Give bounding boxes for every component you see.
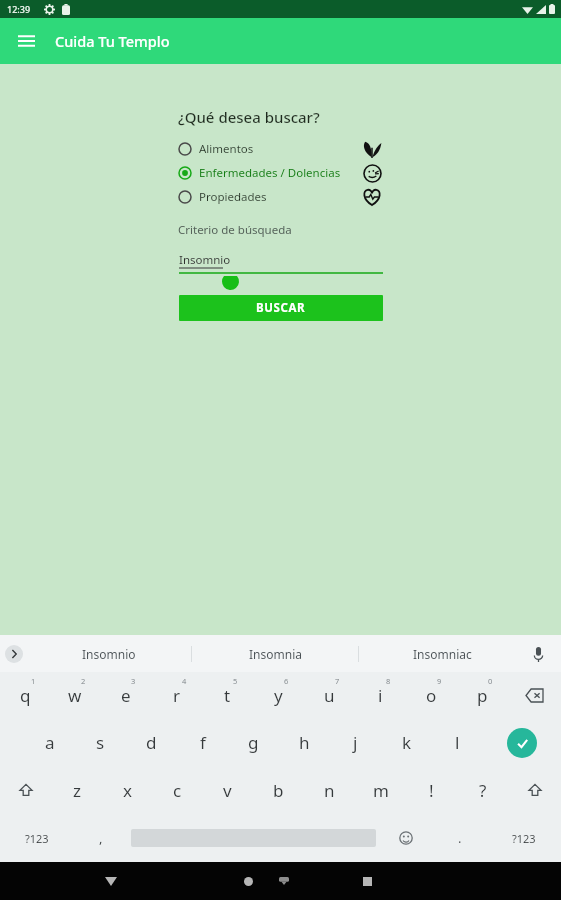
button[interactable]: Shift <box>0 766 52 814</box>
staticText: e <box>121 684 131 707</box>
staticText: k <box>402 731 412 754</box>
button[interactable]: g <box>228 719 279 766</box>
button[interactable]: Home <box>231 864 265 898</box>
staticText: n <box>324 779 335 802</box>
button[interactable]: p <box>457 672 508 719</box>
staticText: 5 <box>233 676 238 686</box>
staticText: t <box>224 684 231 707</box>
staticText: z <box>73 779 81 802</box>
button[interactable]: Enfermedades / Dolencias <box>178 161 341 185</box>
button[interactable]: ?123 <box>487 814 561 862</box>
button[interactable]: ?123 <box>0 814 74 862</box>
button[interactable]: i <box>355 672 406 719</box>
staticText: Insomniac <box>413 646 472 662</box>
staticText: o <box>426 684 437 707</box>
button[interactable]: b <box>253 766 304 814</box>
staticText: ?123 <box>512 831 536 846</box>
staticText: ? <box>479 779 487 802</box>
button[interactable]: Back <box>94 864 128 898</box>
button[interactable]: Expand toolbar <box>2 642 26 666</box>
button[interactable]: f <box>177 719 228 766</box>
button[interactable]: , <box>74 814 128 862</box>
button[interactable]: w <box>50 672 100 719</box>
staticText: y <box>274 684 283 707</box>
button[interactable]: Emoji <box>379 814 433 862</box>
button[interactable]: Insomnio <box>26 635 191 672</box>
button[interactable]: Insomnia <box>192 635 358 672</box>
button[interactable]: o <box>406 672 457 719</box>
button[interactable]: d <box>126 719 177 766</box>
staticText: . <box>458 829 462 847</box>
staticText: f <box>200 731 206 754</box>
button[interactable]: l <box>432 719 483 766</box>
staticText: s <box>96 731 105 754</box>
staticText: , <box>99 829 103 847</box>
button[interactable]: q <box>0 672 50 719</box>
staticText: 0 <box>488 676 493 686</box>
button[interactable]: Recent apps <box>350 864 384 898</box>
staticText: 7 <box>335 676 340 686</box>
button[interactable]: n <box>304 766 355 814</box>
staticText: u <box>324 684 335 707</box>
button[interactable]: . <box>433 814 487 862</box>
button[interactable]: Enter <box>483 719 561 766</box>
button[interactable]: Voice input <box>525 641 551 667</box>
staticText: 3 <box>131 676 136 686</box>
button[interactable]: Shift <box>508 766 561 814</box>
button[interactable]: a <box>25 719 75 766</box>
button[interactable]: Insomniac <box>359 635 525 672</box>
staticText: Cuida Tu Templo <box>55 31 170 51</box>
staticText: 1 <box>31 676 36 686</box>
button[interactable]: Alimentos <box>178 137 254 161</box>
button[interactable]: u <box>304 672 355 719</box>
staticText: 2 <box>81 676 86 686</box>
button[interactable]: Propiedades <box>178 185 267 209</box>
staticText: 8 <box>386 676 391 686</box>
button[interactable]: ! <box>406 766 457 814</box>
button[interactable]: t <box>202 672 253 719</box>
staticText: x <box>123 779 132 802</box>
button[interactable]: s <box>75 719 126 766</box>
button[interactable]: BUSCAR <box>179 295 383 321</box>
button[interactable]: ? <box>457 766 508 814</box>
staticText: i <box>378 684 383 707</box>
button[interactable]: j <box>330 719 381 766</box>
button[interactable]: z <box>52 766 102 814</box>
staticText: Insomnia <box>249 646 302 662</box>
staticText: a <box>45 731 55 754</box>
button[interactable]: m <box>355 766 406 814</box>
button[interactable]: x <box>102 766 152 814</box>
staticText: Propiedades <box>199 189 267 205</box>
staticText: m <box>373 779 389 802</box>
button[interactable]: r <box>151 672 202 719</box>
button[interactable]: Keyboard toggle <box>269 866 299 896</box>
button[interactable]: Backspace <box>508 672 561 719</box>
staticText: d <box>146 731 157 754</box>
staticText: v <box>223 779 232 802</box>
staticText: BUSCAR <box>256 300 306 316</box>
staticText: b <box>273 779 284 802</box>
button[interactable]: y <box>253 672 304 719</box>
staticText: Insomnio <box>82 646 136 662</box>
staticText: ¿Qué desea buscar? <box>178 107 320 127</box>
button[interactable]: e <box>100 672 151 719</box>
staticText: r <box>173 684 181 707</box>
staticText: 6 <box>284 676 289 686</box>
staticText: 4 <box>182 676 187 686</box>
button[interactable]: v <box>202 766 253 814</box>
staticText: q <box>20 684 31 707</box>
button[interactable]: h <box>279 719 330 766</box>
staticText: p <box>477 684 488 707</box>
staticText: Alimentos <box>199 141 254 157</box>
staticText: l <box>455 731 460 754</box>
staticText: ! <box>429 779 434 802</box>
button[interactable]: Open navigation menu <box>10 25 42 57</box>
button[interactable]: c <box>152 766 202 814</box>
button[interactable]: k <box>381 719 432 766</box>
staticText: g <box>248 731 259 754</box>
staticText: Criterio de búsqueda <box>178 222 292 238</box>
staticText: Insomnio <box>179 252 231 268</box>
staticText: 9 <box>437 676 442 686</box>
staticText: w <box>68 684 82 707</box>
